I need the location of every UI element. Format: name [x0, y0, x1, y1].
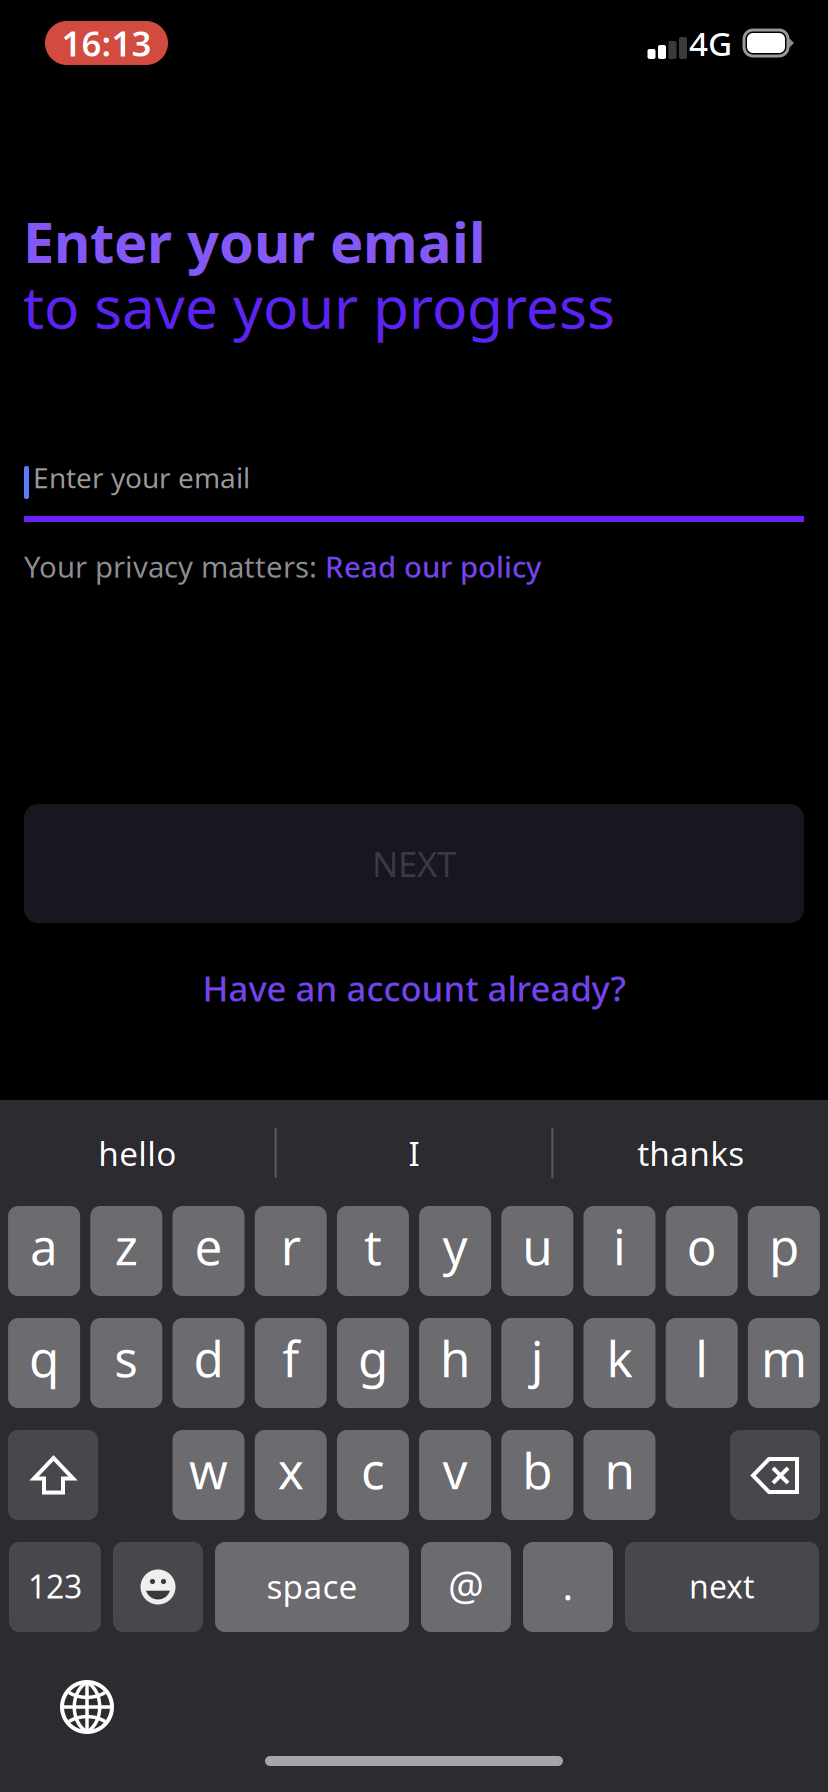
button[interactable]: Have an account already? — [0, 963, 828, 1013]
button[interactable]: t — [337, 1206, 409, 1296]
button[interactable]: i — [583, 1206, 655, 1296]
button[interactable]: p — [748, 1206, 820, 1296]
button[interactable]: v — [419, 1430, 491, 1520]
button[interactable]: b — [501, 1430, 573, 1520]
button[interactable]: q — [8, 1318, 80, 1408]
staticText: v — [443, 1437, 468, 1503]
staticText: 16:13 — [61, 20, 151, 66]
staticText: m — [761, 1325, 807, 1391]
button[interactable]: r — [255, 1206, 327, 1296]
staticText: Read our policy — [325, 547, 541, 586]
staticText: c — [361, 1437, 385, 1503]
staticText: l — [695, 1325, 708, 1391]
button[interactable]: NEXT — [24, 804, 804, 923]
staticText: thanks — [637, 1131, 744, 1175]
button[interactable]: thanks — [553, 1100, 828, 1206]
staticText: 123 — [28, 1565, 82, 1607]
staticText: next — [689, 1565, 755, 1607]
button[interactable]: l — [666, 1318, 738, 1408]
button[interactable]: a — [8, 1206, 80, 1296]
staticText: k — [606, 1325, 632, 1391]
staticText: x — [278, 1437, 304, 1503]
button[interactable]: e — [172, 1206, 244, 1296]
button[interactable]: Emoji — [113, 1542, 203, 1632]
staticText: hello — [98, 1131, 176, 1175]
staticText: i — [613, 1213, 626, 1279]
button[interactable]: hello — [0, 1100, 275, 1206]
staticText: Have an account already? — [202, 965, 625, 1011]
staticText: d — [193, 1325, 223, 1391]
staticText: NEXT — [372, 840, 456, 886]
staticText: @ — [448, 1558, 484, 1611]
button[interactable]: @ — [421, 1542, 511, 1632]
staticText: 4G — [689, 21, 732, 65]
staticText: r — [281, 1213, 301, 1279]
button[interactable]: w — [172, 1430, 244, 1520]
staticText: I — [408, 1131, 419, 1175]
staticText: t — [364, 1213, 382, 1279]
button[interactable]: 123 — [9, 1542, 101, 1632]
staticText: p — [769, 1213, 799, 1279]
staticText: h — [440, 1325, 470, 1391]
staticText: space — [266, 1564, 357, 1608]
staticText: n — [604, 1437, 634, 1503]
button[interactable]: n — [583, 1430, 655, 1520]
button[interactable]: j — [501, 1318, 573, 1408]
button[interactable]: I — [277, 1100, 551, 1206]
staticText: Your privacy matters: — [24, 547, 325, 586]
button[interactable]: f — [255, 1318, 327, 1408]
button[interactable]: . — [523, 1542, 613, 1632]
button[interactable]: Shift — [8, 1430, 98, 1520]
staticText: f — [282, 1325, 299, 1391]
staticText: . — [562, 1558, 573, 1611]
staticText: q — [29, 1325, 59, 1391]
staticText: o — [687, 1213, 717, 1279]
button[interactable]: Change keyboard — [60, 1680, 114, 1734]
staticText: j — [531, 1325, 544, 1391]
staticText: g — [358, 1325, 388, 1391]
button[interactable]: g — [337, 1318, 409, 1408]
button[interactable]: m — [748, 1318, 820, 1408]
button[interactable]: o — [666, 1206, 738, 1296]
staticText: y — [443, 1213, 468, 1279]
staticText: w — [189, 1437, 228, 1503]
button[interactable]: Read our policy — [325, 547, 541, 586]
staticText: to save your progress — [23, 267, 615, 345]
button[interactable]: y — [419, 1206, 491, 1296]
staticText: a — [30, 1213, 58, 1279]
staticText: u — [522, 1213, 552, 1279]
button[interactable]: next — [625, 1542, 819, 1632]
button[interactable]: space — [215, 1542, 409, 1632]
button[interactable]: c — [337, 1430, 409, 1520]
button[interactable]: x — [255, 1430, 327, 1520]
staticText: s — [114, 1325, 138, 1391]
button[interactable]: z — [90, 1206, 162, 1296]
button[interactable]: u — [501, 1206, 573, 1296]
staticText: Enter your email — [33, 459, 250, 496]
button[interactable]: Delete — [730, 1430, 820, 1520]
button[interactable]: k — [583, 1318, 655, 1408]
staticText: b — [522, 1437, 552, 1503]
button[interactable]: h — [419, 1318, 491, 1408]
button[interactable]: d — [172, 1318, 244, 1408]
staticText: e — [194, 1213, 222, 1279]
staticText: z — [115, 1213, 138, 1279]
staticText: Enter your email — [23, 204, 486, 278]
button[interactable]: s — [90, 1318, 162, 1408]
